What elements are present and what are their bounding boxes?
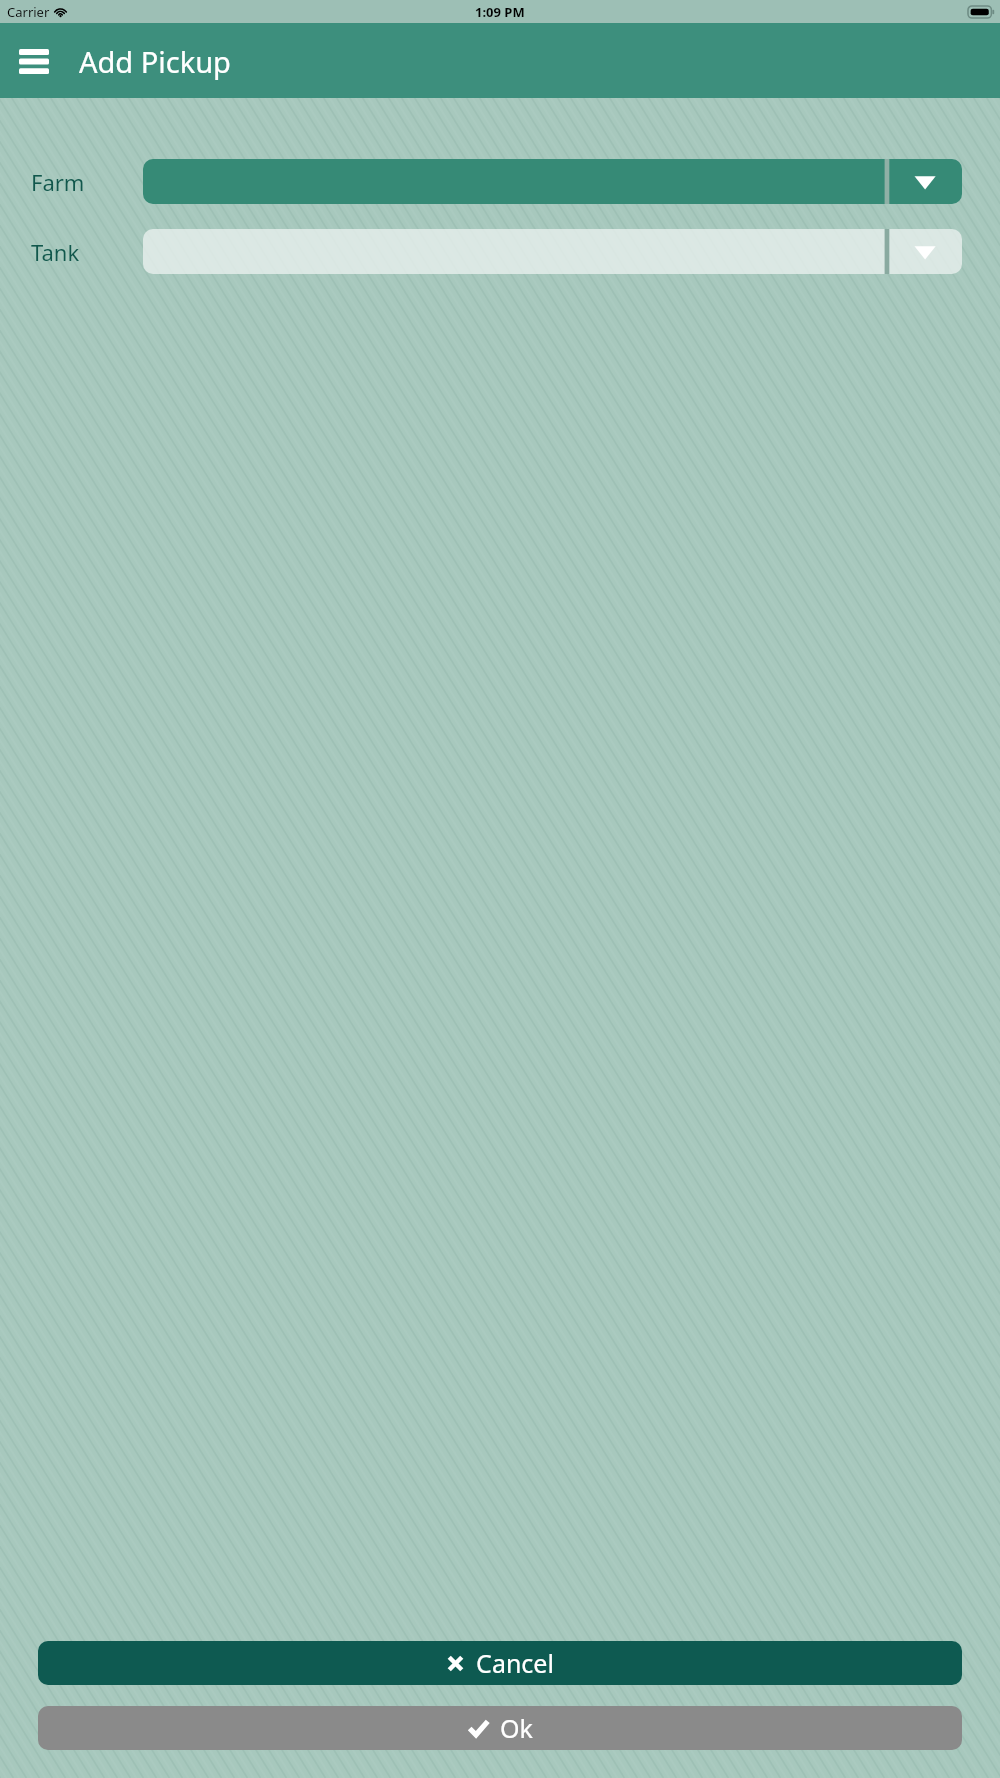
button[interactable]: Tank selector dropdown bbox=[143, 229, 962, 274]
staticText: Carrier bbox=[7, 3, 50, 21]
staticText: Add Pickup bbox=[79, 42, 231, 81]
staticText: Cancel bbox=[476, 1646, 554, 1680]
button[interactable]: Open navigation menu bbox=[10, 37, 58, 85]
button[interactable]: Farm selector dropdown bbox=[143, 159, 962, 204]
staticText: Ok bbox=[500, 1711, 533, 1745]
button[interactable]: Ok bbox=[38, 1706, 962, 1750]
button[interactable]: Cancel bbox=[38, 1641, 962, 1685]
staticText: Tank bbox=[31, 237, 80, 267]
staticText: 1:09 PM bbox=[475, 3, 525, 21]
staticText: Farm bbox=[31, 167, 85, 197]
